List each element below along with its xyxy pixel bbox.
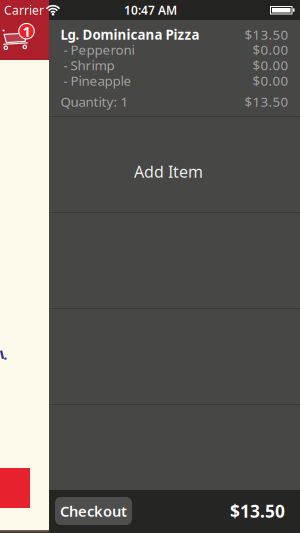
staticText: Checkout xyxy=(60,501,127,521)
button[interactable]: Lg. Dominicana Pizza xyxy=(49,20,300,116)
button[interactable]: Checkout xyxy=(55,497,132,525)
staticText: $0.00 xyxy=(252,56,288,74)
staticText: - Shrimp xyxy=(63,56,114,74)
button[interactable]: Cart xyxy=(0,22,38,56)
staticText: Carrier xyxy=(4,2,44,18)
staticText: $13.50 xyxy=(230,499,285,522)
staticText: Lg. Dominicana Pizza xyxy=(60,26,199,43)
staticText: Quantity: 1 xyxy=(60,93,128,110)
staticText: - Pineapple xyxy=(63,72,131,89)
staticText: $13.50 xyxy=(244,26,288,43)
button[interactable]: Add Item xyxy=(49,117,300,212)
staticText: $13.50 xyxy=(244,93,288,110)
staticText: 1 xyxy=(23,22,31,41)
staticText: $0.00 xyxy=(252,72,288,89)
staticText: - Pepperoni xyxy=(63,41,134,58)
staticText: $0.00 xyxy=(252,41,288,58)
staticText: Add Item xyxy=(134,161,203,182)
staticText: 10:47 AM xyxy=(124,2,177,18)
